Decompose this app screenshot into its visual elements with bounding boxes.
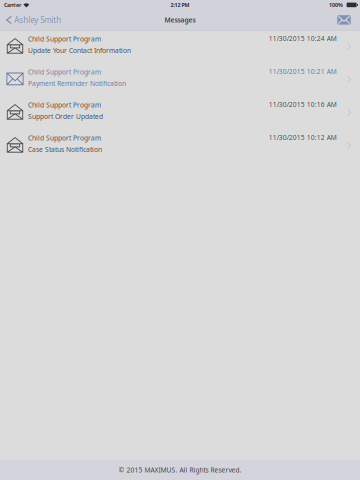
button[interactable]: Ashley Smith bbox=[0, 9, 65, 30]
staticText: Messages bbox=[164, 15, 195, 24]
staticText: Ashley Smith bbox=[14, 15, 61, 25]
button[interactable]: Child Support Program bbox=[0, 64, 360, 97]
staticText: 2:12 PM bbox=[170, 1, 189, 8]
staticText: Child Support Program bbox=[28, 101, 101, 109]
staticText: Support Order Updated bbox=[28, 112, 103, 121]
staticText: Update Your Contact Information bbox=[28, 46, 131, 55]
staticText: Child Support Program bbox=[28, 35, 101, 43]
button[interactable]: Child Support Program bbox=[0, 31, 360, 64]
staticText: 11/30/2015 10:12 AM bbox=[269, 133, 337, 142]
button[interactable]: Child Support Program bbox=[0, 97, 360, 130]
staticText: 11/30/2015 10:16 AM bbox=[269, 100, 337, 109]
staticText: Case Status Notification bbox=[28, 145, 102, 154]
staticText: © 2015 MAXIMUS. All Rights Reserved. bbox=[118, 466, 241, 474]
staticText: Child Support Program bbox=[28, 134, 101, 142]
button[interactable]: Compose message bbox=[337, 9, 360, 30]
staticText: 11/30/2015 10:24 AM bbox=[269, 34, 337, 43]
staticText: Carrier bbox=[4, 1, 21, 8]
button[interactable]: Child Support Program bbox=[0, 130, 360, 163]
staticText: 11/30/2015 10:21 AM bbox=[269, 67, 337, 76]
staticText: Child Support Program bbox=[28, 68, 101, 76]
staticText: 100% bbox=[329, 1, 343, 8]
staticText: Payment Reminder Notification bbox=[28, 79, 126, 88]
